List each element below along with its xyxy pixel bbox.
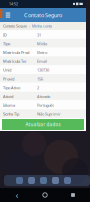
button[interactable]: Home <box>35 188 55 202</box>
staticText: Tipo <box>3 41 10 46</box>
button[interactable]: Contato Seguro <box>3 22 27 30</box>
button[interactable]: Recent apps <box>63 188 83 202</box>
staticText: Ativid <box>3 94 13 99</box>
button[interactable]: Atualizar dados <box>0 118 86 131</box>
staticText: Tipo Ativo <box>3 85 20 90</box>
staticText: ‹ <box>15 189 18 201</box>
staticText: Matrícula Prod <box>3 50 29 55</box>
staticText: Eletro <box>37 50 47 55</box>
button[interactable]: Menu <box>4 8 12 22</box>
staticText: Mídia <box>37 41 47 46</box>
button[interactable]: Minha conta <box>32 22 52 30</box>
staticText: Idioma <box>3 102 15 108</box>
staticText: Atualizar dados <box>25 121 60 128</box>
staticText: Email <box>37 58 47 64</box>
staticText: Não Suprimir <box>37 111 61 117</box>
staticText: 156 <box>37 76 43 81</box>
staticText: Contato Seguro <box>24 11 62 19</box>
staticText: 2 <box>37 85 39 90</box>
staticText: 31 <box>37 32 41 37</box>
staticText: Senha Tip <box>3 111 19 117</box>
staticText: Unid <box>3 67 11 73</box>
staticText: › <box>29 23 30 28</box>
staticText: 130730 <box>37 67 49 73</box>
staticText: 14:52 <box>9 1 18 6</box>
staticText: Ativado <box>37 94 50 99</box>
staticText: Contato Seguro <box>3 23 27 28</box>
staticText: Português <box>37 102 54 108</box>
staticText: Minha conta <box>32 23 52 28</box>
button[interactable]: Back <box>7 188 27 202</box>
staticText: Matrícula Ter <box>3 58 27 64</box>
staticText: ID <box>3 32 7 37</box>
staticText: Provid <box>3 76 14 81</box>
